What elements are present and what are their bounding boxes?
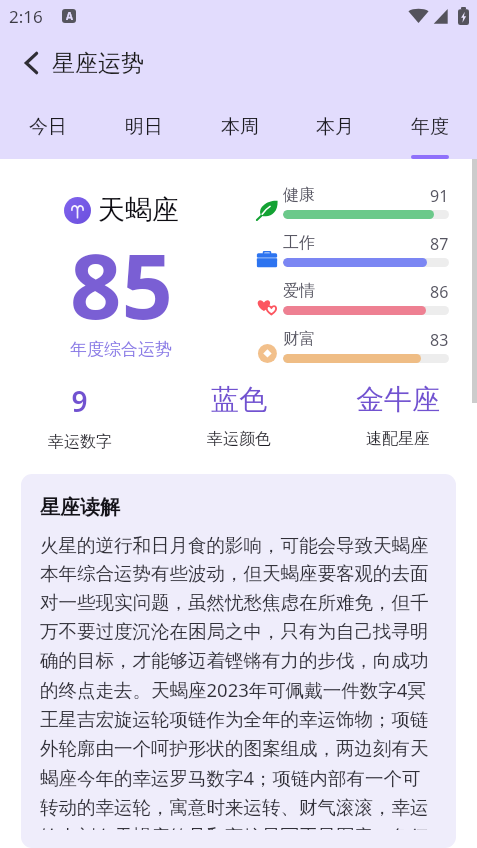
staticText: 工作	[283, 233, 315, 253]
staticText: 天蝎座	[98, 193, 179, 227]
button[interactable]: 财富	[242, 324, 477, 372]
staticText: 85	[70, 223, 173, 346]
button[interactable]: 本周	[192, 96, 287, 159]
staticText: 91	[430, 185, 449, 207]
staticText: 86	[430, 281, 449, 303]
staticText: 年度	[411, 115, 449, 139]
button[interactable]: 本月	[287, 96, 382, 159]
staticText: 83	[430, 329, 449, 351]
button[interactable]: 爱情	[242, 276, 477, 324]
staticText: 幸运颜色	[207, 429, 271, 449]
staticText: A	[66, 9, 73, 23]
button[interactable]: 金牛座	[318, 382, 477, 449]
staticText: 幸运数字	[48, 432, 112, 452]
staticText: 爱情	[283, 281, 315, 301]
staticText: 本月	[316, 115, 354, 139]
button[interactable]: 蓝色	[159, 382, 318, 449]
staticText: 财富	[283, 329, 315, 349]
staticText: 今日	[29, 115, 67, 139]
staticText: 速配星座	[366, 429, 430, 449]
staticText: 蓝色	[211, 382, 267, 417]
button[interactable]: 9	[0, 382, 159, 452]
button[interactable]: 明日	[96, 96, 192, 159]
staticText: 本周	[221, 115, 259, 139]
button[interactable]: 今日	[0, 96, 96, 159]
staticText: 9	[71, 382, 88, 420]
staticText: 火星的逆行和日月食的影响，可能会导致天蝎座本年综合运势有些波动，但天蝎座要客观的…	[40, 534, 437, 830]
button[interactable]: 年度	[382, 96, 477, 159]
staticText: 星座运势	[52, 49, 144, 78]
staticText: 金牛座	[356, 382, 440, 417]
staticText: 明日	[125, 115, 163, 139]
staticText: 星座读解	[40, 495, 120, 520]
staticText: 年度综合运势	[70, 339, 172, 360]
staticText: 健康	[283, 185, 315, 205]
button[interactable]: 健康	[242, 180, 477, 228]
staticText: 2:16	[9, 5, 43, 28]
staticText: 87	[430, 233, 449, 255]
button[interactable]: 工作	[242, 228, 477, 276]
button[interactable]: Back	[0, 40, 46, 86]
